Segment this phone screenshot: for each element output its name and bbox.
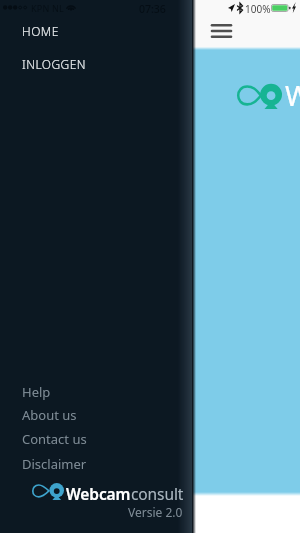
- staticText: KPN NL: [31, 2, 64, 14]
- button[interactable]: About us: [0, 403, 193, 426]
- staticText: Webcam: [66, 483, 131, 501]
- button[interactable]: Help: [0, 380, 193, 403]
- staticText: W: [285, 76, 300, 114]
- staticText: consult: [131, 483, 184, 501]
- staticText: 07:36: [139, 2, 166, 16]
- button[interactable]: HOME: [0, 20, 193, 42]
- staticText: Help: [22, 383, 51, 401]
- staticText: INLOGGEN: [22, 56, 86, 72]
- button[interactable]: INLOGGEN: [0, 53, 193, 75]
- staticText: Contact us: [22, 430, 87, 448]
- staticText: About us: [22, 406, 77, 424]
- button[interactable]: Disclaimer: [0, 452, 193, 475]
- staticText: Versie 2.0: [128, 504, 183, 520]
- staticText: HOME: [22, 23, 59, 39]
- staticText: Disclaimer: [22, 455, 87, 473]
- button[interactable]: Open navigation menu: [205, 17, 237, 44]
- staticText: 100%: [245, 2, 271, 16]
- button[interactable]: Contact us: [0, 427, 193, 450]
